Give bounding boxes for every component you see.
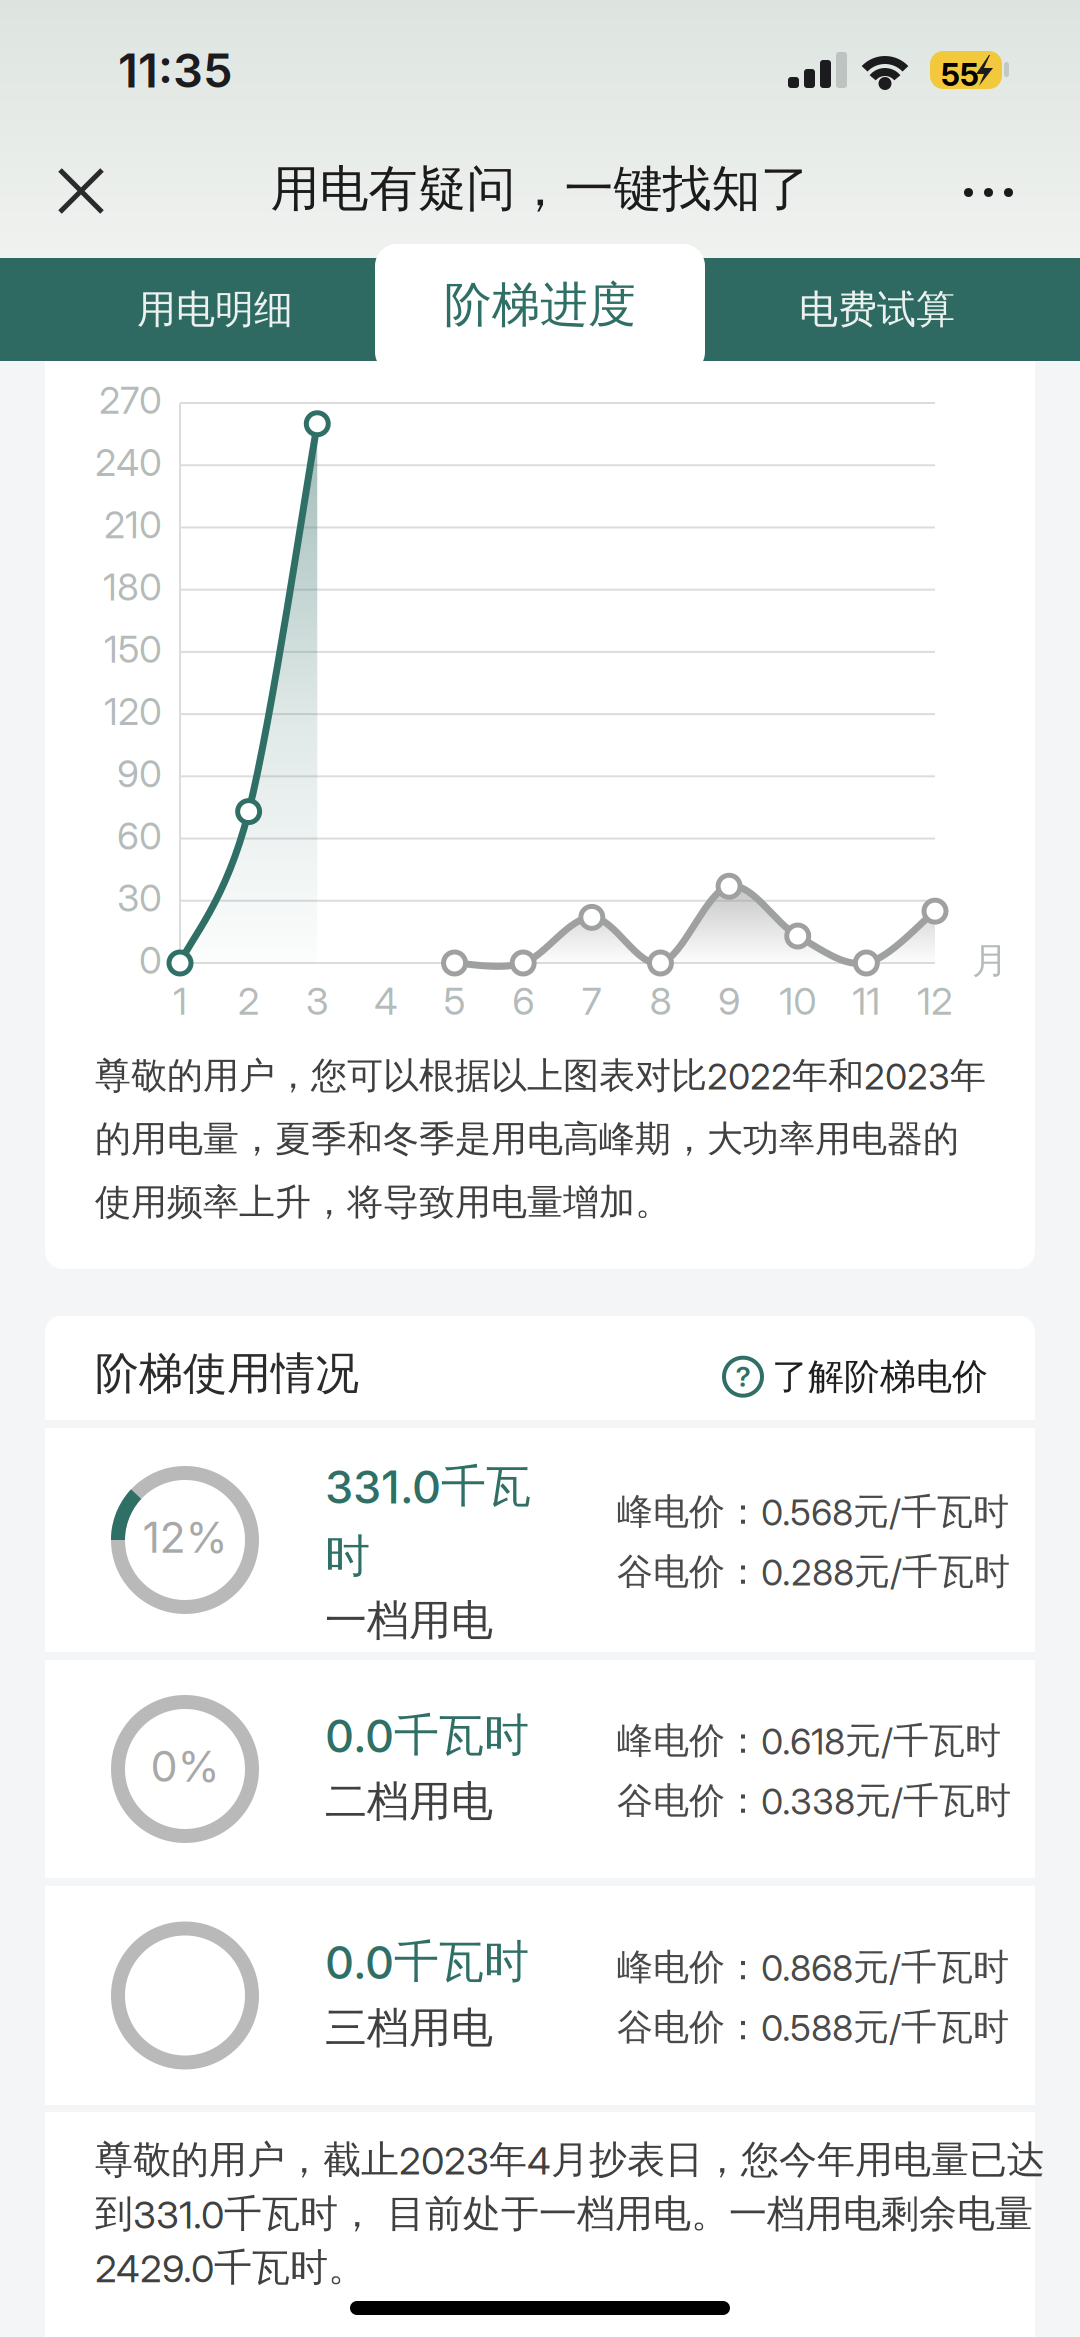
staticText: 尊敬的用户，截止2023年4月抄表日，您今年用电量已达 到331.0千瓦时， 目… — [95, 2136, 1045, 2292]
staticText: 谷电价：0.588元/千瓦时 — [617, 2004, 1009, 2050]
staticText: 11:35 — [118, 42, 233, 99]
staticText: 用电有疑问，一键找知了 — [270, 158, 809, 220]
staticText: 0 — [139, 938, 162, 983]
button[interactable]: 阶梯进度 — [375, 250, 705, 360]
staticText: 11 — [852, 978, 880, 1024]
staticText: 峰电价：0.568元/千瓦时 — [617, 1489, 1009, 1534]
staticText: 电费试算 — [799, 285, 955, 334]
button[interactable]: Close — [58, 168, 104, 214]
staticText: 8 — [649, 978, 671, 1024]
staticText: 0.0千瓦时 — [325, 1707, 529, 1764]
staticText: 30 — [117, 876, 162, 921]
staticText: 5 — [443, 978, 465, 1024]
staticText: ? — [735, 1360, 750, 1394]
staticText: 一档用电 — [325, 1594, 493, 1647]
staticText: 55 — [941, 56, 979, 93]
button[interactable]: 电费试算 — [712, 258, 1042, 361]
staticText: 三档用电 — [325, 2001, 493, 2054]
staticText: 120 — [104, 689, 162, 734]
staticText: 60 — [117, 814, 162, 858]
staticText: 3 — [306, 978, 329, 1024]
staticText: 9 — [718, 978, 740, 1024]
staticText: 180 — [103, 565, 162, 609]
staticText: 210 — [104, 502, 162, 547]
staticText: 谷电价：0.338元/千瓦时 — [617, 1778, 1011, 1823]
staticText: 峰电价：0.868元/千瓦时 — [617, 1944, 1009, 1990]
button[interactable]: More — [964, 188, 1013, 197]
staticText: 阶梯使用情况 — [95, 1346, 359, 1401]
staticText: 7 — [582, 978, 602, 1024]
staticText: 4 — [374, 978, 398, 1024]
staticText: 了解阶梯电价 — [772, 1354, 988, 1399]
staticText: 2 — [238, 978, 260, 1024]
staticText: 150 — [104, 627, 162, 672]
staticText: 12 — [917, 978, 953, 1024]
staticText: 270 — [99, 378, 162, 423]
staticText: 月 — [972, 938, 1008, 983]
staticText: 1 — [173, 978, 187, 1024]
button[interactable]: 用电明细 — [50, 258, 380, 361]
staticText: 0.0千瓦时 — [325, 1933, 529, 1990]
staticText: 0% — [150, 1740, 219, 1792]
staticText: 二档用电 — [325, 1775, 493, 1828]
staticText: 尊敬的用户，您可以根据以上图表对比2022年和2023年 的用电量，夏季和冬季是… — [95, 1053, 986, 1225]
staticText: 10 — [779, 978, 816, 1024]
staticText: 240 — [95, 440, 162, 485]
staticText: 331.0千瓦 — [325, 1458, 531, 1515]
staticText: 6 — [512, 978, 534, 1024]
staticText: 90 — [117, 751, 162, 796]
staticText: 用电明细 — [137, 285, 293, 334]
staticText: 阶梯进度 — [444, 275, 636, 335]
button[interactable]: ? — [724, 1354, 988, 1399]
staticText: 时 — [325, 1528, 370, 1585]
staticText: 峰电价：0.618元/千瓦时 — [617, 1718, 1001, 1763]
staticText: 谷电价：0.288元/千瓦时 — [617, 1549, 1010, 1594]
staticText: 12% — [142, 1511, 227, 1563]
